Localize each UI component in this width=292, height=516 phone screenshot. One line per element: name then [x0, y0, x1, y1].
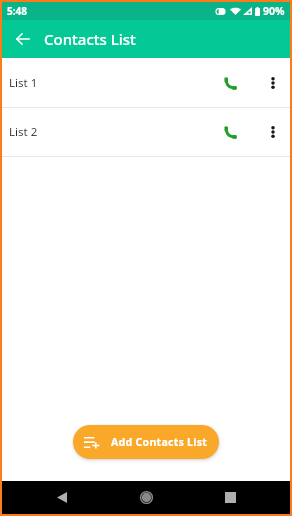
staticText: Contacts List — [44, 29, 136, 49]
button[interactable]: More options — [260, 110, 286, 154]
staticText: List 1 — [9, 75, 38, 91]
button[interactable]: Recent apps — [188, 481, 272, 514]
button[interactable]: Back — [20, 481, 104, 514]
button[interactable]: More options — [260, 61, 286, 105]
staticText: 5:48 — [7, 4, 27, 18]
staticText: 90% — [263, 4, 285, 18]
button[interactable]: List 2 — [2, 108, 290, 156]
button[interactable]: Call — [209, 61, 252, 105]
button[interactable]: List 1 — [2, 58, 290, 107]
button[interactable]: Call — [209, 110, 252, 154]
staticText: List 2 — [9, 124, 38, 140]
button[interactable]: Add Contacts List — [73, 425, 219, 459]
staticText: Add Contacts List — [111, 435, 208, 449]
button[interactable]: Home — [104, 481, 188, 514]
button[interactable]: Back — [2, 20, 43, 58]
